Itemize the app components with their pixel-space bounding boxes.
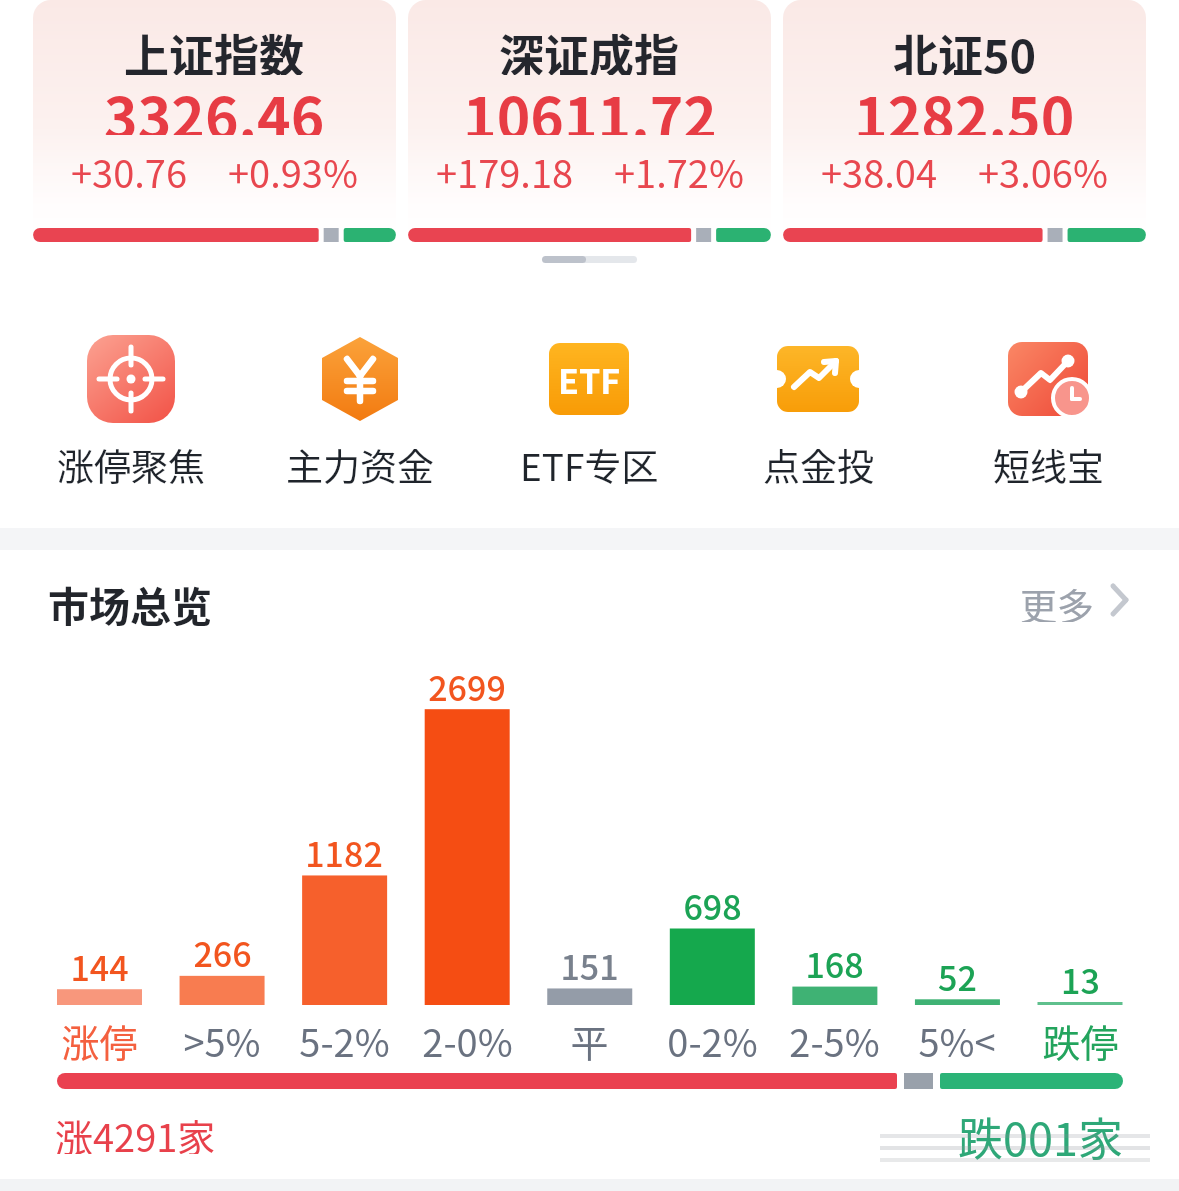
- button[interactable]: 上证指数: [33, 0, 396, 252]
- staticText: 北证50: [893, 21, 1037, 75]
- staticText: 10611.72: [463, 73, 717, 135]
- staticText: 点金投: [763, 438, 874, 488]
- staticText: 跌001家: [958, 1104, 1123, 1169]
- staticText: 涨停: [61, 1013, 138, 1068]
- staticText: 266: [193, 928, 252, 977]
- staticText: 168: [805, 939, 864, 988]
- staticText: 市场总览: [48, 574, 212, 626]
- button[interactable]: 涨停聚焦: [51, 330, 211, 488]
- staticText: 698: [683, 881, 742, 930]
- button[interactable]: ETF: [509, 330, 669, 488]
- staticText: 13: [1061, 955, 1100, 1004]
- staticText: 2-5%: [789, 1013, 880, 1068]
- button[interactable]: 北证50: [783, 0, 1146, 252]
- staticText: 52: [938, 952, 977, 1001]
- button[interactable]: 主力资金: [280, 330, 440, 488]
- staticText: 上证指数: [124, 21, 305, 75]
- button[interactable]: 短线宝: [968, 330, 1128, 488]
- staticText: 涨4291家: [55, 1108, 216, 1154]
- staticText: 短线宝: [993, 438, 1104, 488]
- staticText: 1182: [305, 828, 383, 877]
- staticText: +30.76: [71, 144, 188, 188]
- staticText: 涨停聚焦: [57, 438, 205, 488]
- staticText: 跌停: [1042, 1013, 1119, 1068]
- staticText: 1282.50: [854, 73, 1075, 135]
- button[interactable]: 更多: [1020, 578, 1132, 622]
- staticText: >5%: [183, 1013, 261, 1068]
- staticText: 更多: [1020, 578, 1094, 622]
- staticText: 主力资金: [286, 438, 434, 488]
- staticText: ETF: [558, 355, 621, 404]
- staticText: +1.72%: [614, 144, 744, 188]
- staticText: +38.04: [821, 144, 938, 188]
- staticText: 2-0%: [422, 1013, 513, 1068]
- button[interactable]: 深证成指: [408, 0, 771, 252]
- staticText: 5%<: [918, 1013, 996, 1068]
- staticText: 151: [560, 941, 619, 990]
- button[interactable]: 点金投: [738, 330, 898, 488]
- staticText: 144: [70, 942, 129, 991]
- staticText: 平: [570, 1013, 609, 1068]
- staticText: 0-2%: [667, 1013, 758, 1068]
- staticText: ETF专区: [520, 438, 659, 488]
- staticText: 2699: [428, 662, 506, 711]
- staticText: 5-2%: [299, 1013, 390, 1068]
- staticText: 3326.46: [104, 73, 325, 135]
- staticText: +0.93%: [228, 144, 358, 188]
- staticText: +179.18: [436, 144, 574, 188]
- staticText: 深证成指: [499, 21, 680, 75]
- staticText: +3.06%: [978, 144, 1108, 188]
